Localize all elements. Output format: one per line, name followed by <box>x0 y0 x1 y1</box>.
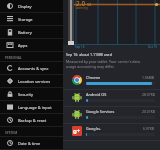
staticText: Date & time <box>18 141 41 146</box>
staticText: 28.07KB <box>142 92 155 97</box>
staticText: usage accounting may differ. <box>66 64 115 69</box>
button[interactable]: Storage <box>0 13 63 26</box>
staticText: Sep 16 <box>75 45 85 49</box>
staticText: warning <box>76 6 88 10</box>
button[interactable]: Language & input <box>0 101 63 114</box>
staticText: 2.0 <box>76 0 86 8</box>
button[interactable]: Android OS <box>63 90 160 107</box>
staticText: PERSONAL <box>5 56 22 60</box>
staticText: Battery <box>18 30 32 35</box>
button[interactable]: Apps <box>0 39 63 52</box>
staticText: Storage <box>18 17 33 22</box>
button[interactable]: g+ <box>63 124 160 141</box>
staticText: Oct 15 <box>148 45 158 49</box>
staticText: Google+ <box>86 126 143 131</box>
button[interactable]: Battery <box>0 26 63 39</box>
staticText: Backup & reset <box>18 118 47 123</box>
staticText: Language & input <box>18 105 52 110</box>
button[interactable]: Google Services <box>63 107 160 124</box>
staticText: 1.06MB <box>142 75 155 80</box>
staticText: SYSTEM <box>5 131 18 135</box>
staticText: 20.07KB <box>142 109 155 114</box>
staticText: Android OS <box>86 92 142 97</box>
button[interactable]: Display <box>0 0 63 13</box>
staticText: Apps <box>18 43 28 48</box>
button[interactable]: Date & time <box>0 137 63 150</box>
staticText: Accounts & sync <box>18 66 49 71</box>
button[interactable]: Location services <box>0 75 63 88</box>
button[interactable]: Backup & reset <box>0 114 63 127</box>
staticText: Sep 16: about 1.11MB used <box>66 52 112 57</box>
staticText: Display <box>18 4 32 9</box>
button[interactable]: Chrome <box>63 73 160 90</box>
staticText: Google Services <box>86 109 142 114</box>
button[interactable]: Accounts & sync <box>0 62 63 75</box>
button[interactable]: Security <box>0 88 63 101</box>
staticText: GB <box>87 3 92 7</box>
staticText: Measured by your tablet. Your carrier's … <box>66 59 140 64</box>
staticText: g+ <box>73 127 81 135</box>
staticText: Chrome <box>86 75 142 80</box>
staticText: Location services <box>18 79 51 84</box>
staticText: Security <box>18 92 34 97</box>
staticText: 6.97KB <box>143 126 155 131</box>
